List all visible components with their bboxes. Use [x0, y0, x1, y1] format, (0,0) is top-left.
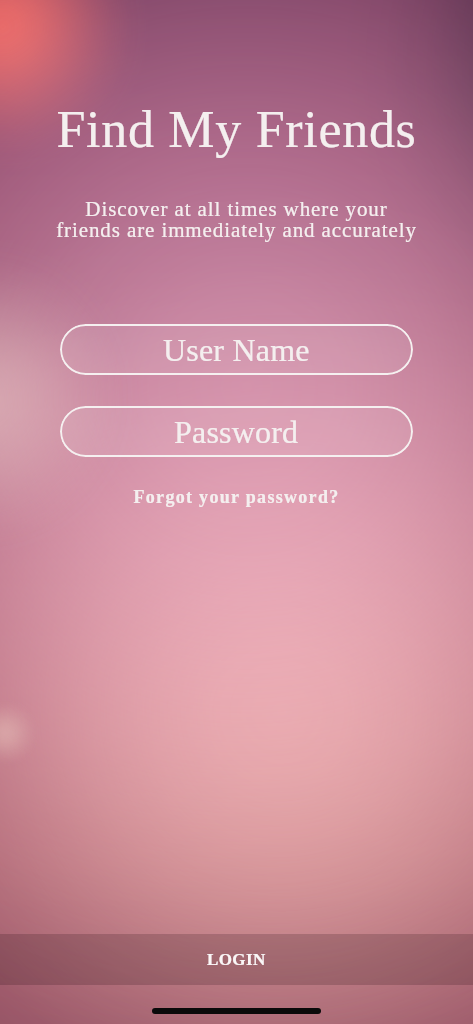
other: Home indicator — [152, 1008, 321, 1014]
button[interactable]: LOGIN — [0, 934, 473, 985]
button[interactable]: User Name — [60, 324, 413, 375]
staticText: Password — [174, 414, 299, 449]
staticText: Find My Friends — [0, 101, 473, 159]
staticText: Discover at all times where your friends… — [0, 197, 473, 242]
staticText: LOGIN — [207, 950, 266, 969]
button[interactable]: Password — [60, 406, 413, 457]
staticText: User Name — [163, 332, 310, 367]
button[interactable]: Forgot your password? — [0, 487, 473, 507]
